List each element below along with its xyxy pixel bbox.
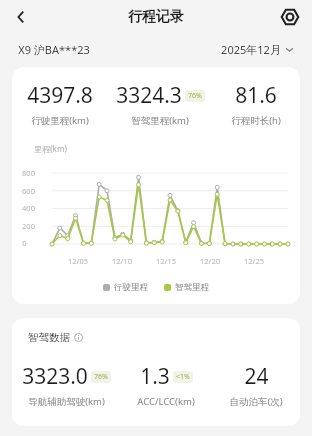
staticText: 12/15 xyxy=(156,256,176,266)
staticText: 里程(km) xyxy=(34,143,67,154)
staticText: 76% xyxy=(188,91,202,101)
staticText: 2025年12月 xyxy=(221,42,281,57)
staticText: 81.6 xyxy=(235,81,277,110)
staticText: 400 xyxy=(22,203,35,213)
staticText: 24 xyxy=(244,362,269,391)
staticText: 12/20 xyxy=(200,256,220,266)
staticText: 行程时长(h) xyxy=(231,114,281,127)
staticText: 3323.0 xyxy=(22,362,88,391)
staticText: <1% xyxy=(176,372,190,382)
staticText: ACC/LCC(km) xyxy=(137,395,195,408)
staticText: 自动泊车(次) xyxy=(229,395,283,408)
staticText: 智驾里程 xyxy=(175,282,209,293)
button[interactable]: Settings xyxy=(276,3,304,31)
staticText: 3324.3 xyxy=(116,81,182,110)
staticText: 智驾里程(km) xyxy=(131,114,189,127)
staticText: 行驶里程 xyxy=(114,282,148,293)
button[interactable]: Back xyxy=(6,2,36,32)
staticText: 导航辅助驾驶(km) xyxy=(28,395,105,408)
staticText: 600 xyxy=(22,186,35,196)
staticText: 0 xyxy=(22,238,27,248)
staticText: 12/25 xyxy=(244,256,264,266)
button[interactable]: 2025年12月 xyxy=(221,42,294,57)
staticText: 行程记录 xyxy=(128,8,184,26)
staticText: X9 沪BA***23 xyxy=(18,42,90,57)
staticText: 200 xyxy=(22,221,35,231)
staticText: 800 xyxy=(22,168,35,178)
staticText: 行驶里程(km) xyxy=(31,114,89,127)
button[interactable]: Info xyxy=(73,332,84,343)
staticText: 智驾数据 xyxy=(28,331,70,344)
staticText: 1.3 xyxy=(140,362,170,391)
staticText: 76% xyxy=(94,372,108,382)
staticText: 12/05 xyxy=(68,256,88,266)
staticText: 4397.8 xyxy=(27,81,93,110)
staticText: 12/10 xyxy=(112,256,132,266)
